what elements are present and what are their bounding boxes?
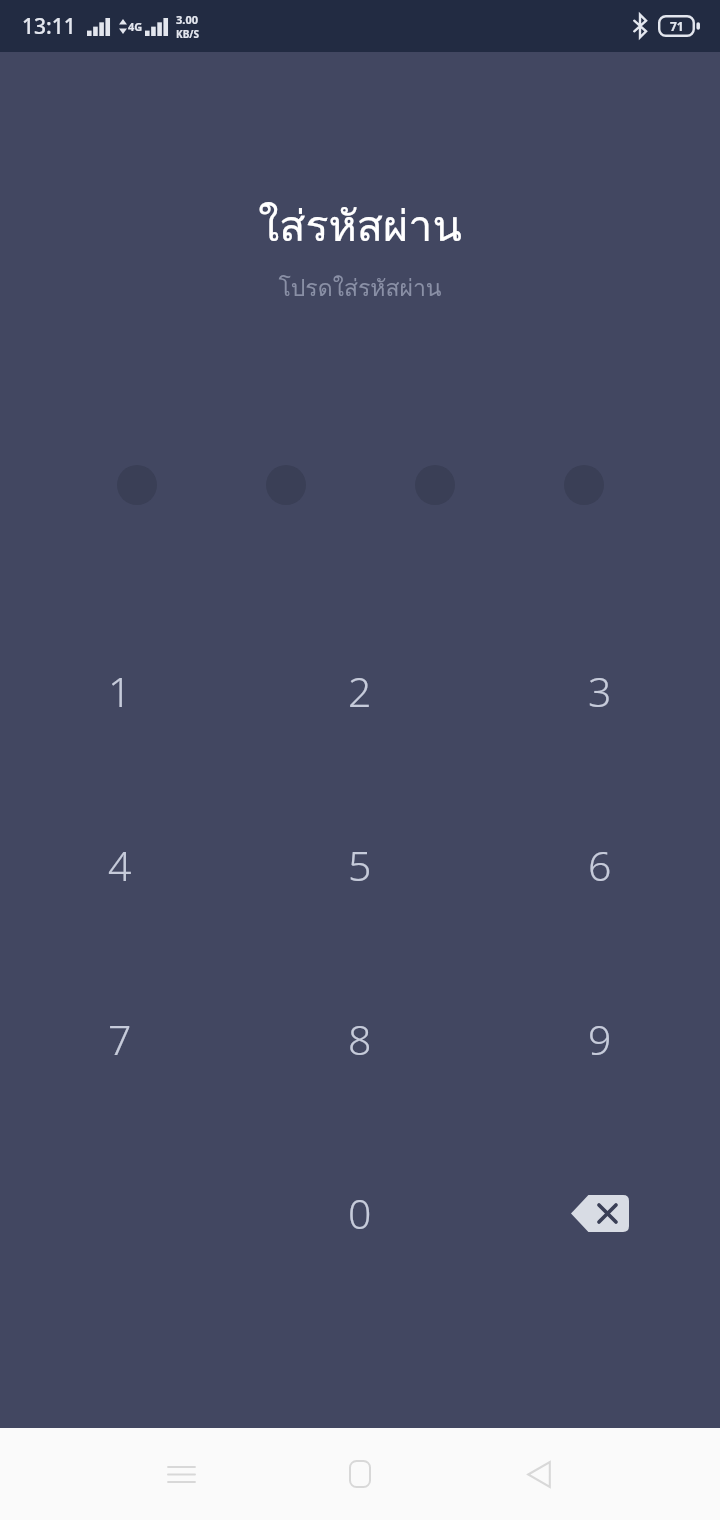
button[interactable]: 2 <box>240 635 480 747</box>
staticText: 3.00 <box>176 12 198 27</box>
button[interactable]: 8 <box>240 983 480 1095</box>
staticText: 1 <box>108 663 132 719</box>
button[interactable]: Back <box>503 1438 575 1510</box>
staticText: 9 <box>588 1011 612 1067</box>
button[interactable]: 1 <box>0 635 240 747</box>
staticText: 4G <box>128 19 143 34</box>
staticText: ใส่รหัสผ่าน <box>258 192 462 260</box>
staticText: 0 <box>348 1185 372 1241</box>
staticText: 2 <box>348 663 372 719</box>
button[interactable]: 9 <box>480 983 720 1095</box>
button[interactable]: 7 <box>0 983 240 1095</box>
button[interactable]: 5 <box>240 809 480 921</box>
button[interactable]: Backspace <box>480 1157 720 1269</box>
staticText: โปรดใส่รหัสผ่าน <box>278 270 442 307</box>
button[interactable]: 3 <box>480 635 720 747</box>
staticText: 13:11 <box>22 12 76 41</box>
button[interactable]: Recent apps <box>145 1438 217 1510</box>
staticText: 3 <box>588 663 612 719</box>
staticText: 7 <box>108 1011 132 1067</box>
staticText: 4 <box>108 837 132 893</box>
button[interactable]: 4 <box>0 809 240 921</box>
staticText: KB/S <box>176 27 199 41</box>
button[interactable]: 0 <box>240 1157 480 1269</box>
staticText: 5 <box>348 837 372 893</box>
button[interactable]: Home <box>324 1438 396 1510</box>
staticText: 6 <box>588 837 612 893</box>
staticText: 8 <box>348 1011 372 1067</box>
staticText: 71 <box>670 18 684 34</box>
button[interactable]: 6 <box>480 809 720 921</box>
